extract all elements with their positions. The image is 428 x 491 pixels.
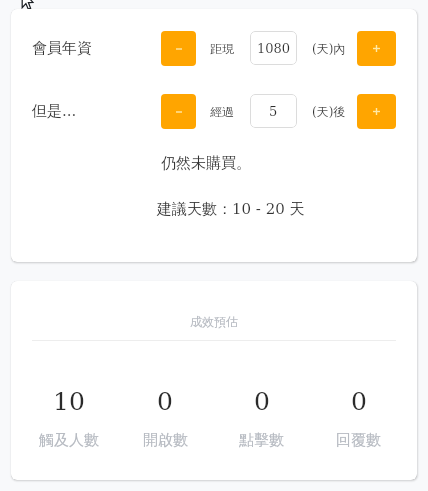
staticText: 5 [269,104,278,119]
staticText: (天)後 [312,104,346,119]
button[interactable]: Increase [357,31,396,66]
staticText: 會員年資 [32,39,92,58]
button[interactable]: 0 [117,387,213,450]
button[interactable]: 10 [21,387,117,450]
staticText: 1080 [257,41,291,56]
staticText: 0 [351,387,367,416]
button[interactable]: 1080 [250,31,297,65]
staticText: (天)內 [312,41,346,56]
button[interactable]: Increase [357,94,396,129]
staticText: 回覆數 [336,431,381,450]
staticText: 成效預估 [11,314,417,329]
staticText: 觸及人數 [39,431,99,450]
button[interactable]: Decrease [161,94,196,129]
staticText: 仍然未購買。 [161,154,251,173]
staticText: 但是... [32,102,77,121]
staticText: 0 [157,387,173,416]
staticText: 開啟數 [143,431,188,450]
button[interactable]: 會員年資 [32,23,92,74]
staticText: 0 [254,387,270,416]
staticText: 經過 [210,104,234,119]
button[interactable]: 但是... [32,86,77,137]
button[interactable]: 5 [250,94,297,128]
staticText: 10 [53,387,85,416]
staticText: 距現 [210,41,234,56]
button[interactable]: Decrease [161,31,196,66]
button[interactable]: 0 [213,387,310,450]
staticText: 點擊數 [239,431,284,450]
button[interactable]: 0 [310,387,407,450]
staticText: 建議天數：10 - 20 天 [157,200,305,219]
